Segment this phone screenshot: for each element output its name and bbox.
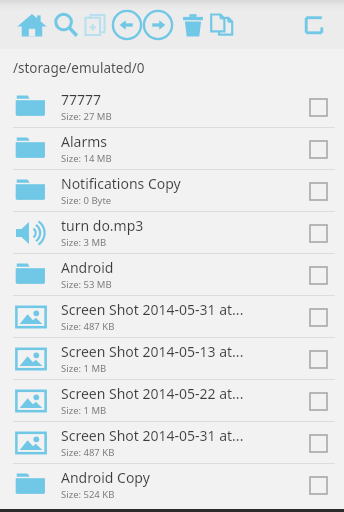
button[interactable]: 77777 [0, 86, 344, 127]
button[interactable]: Select turn do.mp3 [296, 213, 340, 253]
button[interactable]: Copy [207, 10, 237, 40]
button[interactable]: Alarms [0, 128, 344, 169]
button[interactable]: Select Android [296, 255, 340, 295]
button[interactable]: Select Android Copy [296, 465, 340, 505]
button[interactable]: Screen Shot 2014-05-13 at... [0, 338, 344, 379]
button[interactable]: Select 77777 [296, 87, 340, 127]
button[interactable]: Select Screen Shot 2014-05-13 at... [296, 339, 340, 379]
button[interactable]: Select Screen Shot 2014-05-31 at... [296, 297, 340, 337]
button[interactable]: Home [16, 9, 48, 41]
staticText: Size: 14 MB [61, 152, 112, 165]
button[interactable]: Select Notifications Copy [296, 171, 340, 211]
button[interactable]: Notifications Copy [0, 170, 344, 211]
staticText: Screen Shot 2014-05-31 at... [61, 300, 244, 319]
staticText: Android [61, 258, 114, 277]
button[interactable]: Back [111, 9, 143, 41]
staticText: /storage/emulated/0 [13, 59, 145, 77]
staticText: 77777 [61, 90, 102, 109]
staticText: Size: 524 KB [61, 488, 115, 501]
button[interactable]: Android [0, 254, 344, 295]
staticText: Android Copy [61, 468, 150, 487]
staticText: Screen Shot 2014-05-31 at... [61, 426, 244, 445]
staticText: Alarms [61, 132, 107, 151]
staticText: Size: 3 MB [61, 236, 107, 249]
staticText: Size: 1 MB [61, 404, 107, 417]
staticText: Size: 53 MB [61, 278, 112, 291]
button[interactable]: Select Screen Shot 2014-05-22 at... [296, 381, 340, 421]
button[interactable]: turn do.mp3 [0, 212, 344, 253]
staticText: Size: 27 MB [61, 110, 112, 123]
button[interactable]: Select Screen Shot 2014-05-31 at... [296, 423, 340, 463]
staticText: Screen Shot 2014-05-13 at... [61, 342, 244, 361]
staticText: Size: 1 MB [61, 362, 107, 375]
button[interactable]: Android Copy [0, 464, 344, 505]
button[interactable]: Screen Shot 2014-05-31 at... [0, 422, 344, 463]
staticText: Size: 0 Byte [61, 194, 112, 207]
button[interactable]: Screen Shot 2014-05-22 at... [0, 380, 344, 421]
staticText: turn do.mp3 [61, 216, 144, 235]
button[interactable]: Delete [178, 10, 208, 40]
button[interactable]: New file [81, 11, 109, 39]
button[interactable]: Refresh [301, 12, 327, 38]
staticText: Size: 487 KB [61, 320, 115, 333]
staticText: Size: 487 KB [61, 446, 115, 459]
staticText: Screen Shot 2014-05-22 at... [61, 384, 244, 403]
button[interactable]: Forward [142, 9, 174, 41]
button[interactable]: Select Alarms [296, 129, 340, 169]
button[interactable]: Search [51, 10, 81, 40]
staticText: Notifications Copy [61, 174, 181, 193]
button[interactable]: Screen Shot 2014-05-31 at... [0, 296, 344, 337]
